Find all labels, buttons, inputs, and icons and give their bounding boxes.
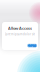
staticText: Allow Access (8, 25, 32, 31)
staticText: Lorem ipsum dolor sit (5, 32, 35, 36)
staticText: Continue (28, 42, 37, 49)
button[interactable]: Continue (28, 44, 37, 47)
